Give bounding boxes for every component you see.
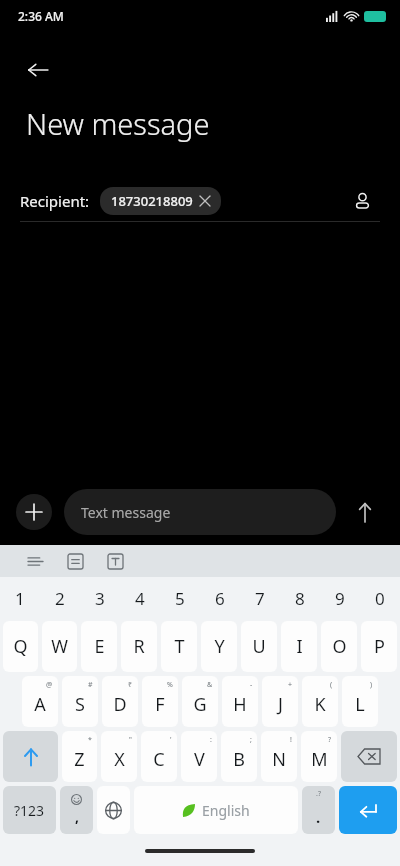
staticText: W bbox=[51, 634, 68, 659]
button[interactable]: 1 bbox=[0, 577, 40, 619]
button[interactable]: Text message bbox=[64, 489, 336, 535]
staticText: * bbox=[88, 735, 92, 745]
button[interactable]: ' bbox=[141, 731, 177, 782]
button[interactable]: ; bbox=[221, 731, 257, 782]
staticText: 2 bbox=[55, 587, 65, 610]
staticText: F bbox=[155, 692, 165, 717]
button[interactable]: ₹ bbox=[102, 676, 138, 727]
button[interactable]: : bbox=[181, 731, 217, 782]
button[interactable]: Choose contact bbox=[344, 183, 380, 219]
button[interactable]: Add attachment bbox=[16, 494, 52, 530]
staticText: New message bbox=[26, 104, 210, 143]
button[interactable]: + bbox=[262, 676, 298, 727]
staticText: 18730218809 bbox=[111, 192, 193, 210]
staticText: # bbox=[88, 680, 93, 690]
button[interactable]: ? bbox=[301, 731, 337, 782]
staticText: ? bbox=[328, 735, 332, 745]
staticText: Z bbox=[74, 747, 85, 772]
staticText: Text message bbox=[81, 503, 171, 522]
staticText: : bbox=[210, 735, 212, 745]
button[interactable]: T bbox=[161, 621, 197, 672]
button[interactable]: Emoji and comma bbox=[60, 786, 93, 834]
staticText: R bbox=[133, 634, 145, 659]
button[interactable]: 0 bbox=[360, 577, 400, 619]
button[interactable]: E bbox=[81, 621, 117, 672]
staticText: 7 bbox=[255, 587, 265, 610]
staticText: , bbox=[75, 807, 79, 826]
staticText: S bbox=[75, 692, 85, 717]
button[interactable]: P bbox=[361, 621, 397, 672]
button[interactable]: Y bbox=[201, 621, 237, 672]
staticText: ?123 bbox=[14, 801, 45, 820]
button[interactable]: * bbox=[62, 731, 97, 782]
button[interactable]: % bbox=[142, 676, 178, 727]
staticText: O bbox=[332, 634, 347, 659]
button[interactable]: Menu bbox=[22, 548, 48, 574]
staticText: P bbox=[374, 634, 385, 659]
staticText: ₹ bbox=[128, 680, 133, 690]
staticText: ; bbox=[250, 735, 252, 745]
button[interactable]: Backspace bbox=[341, 731, 397, 782]
staticText: @ bbox=[46, 680, 53, 690]
button[interactable]: O bbox=[321, 621, 357, 672]
button[interactable]: Text editing bbox=[102, 548, 128, 574]
staticText: Y bbox=[214, 634, 225, 659]
button[interactable]: 18730218809 bbox=[100, 187, 221, 215]
button[interactable]: 9 bbox=[320, 577, 360, 619]
staticText: E bbox=[94, 634, 105, 659]
staticText: I bbox=[296, 634, 303, 659]
button[interactable]: Q bbox=[3, 621, 38, 672]
staticText: L bbox=[355, 692, 365, 717]
button[interactable]: 6 bbox=[200, 577, 240, 619]
staticText: G bbox=[193, 692, 207, 717]
button[interactable]: @ bbox=[22, 676, 58, 727]
staticText: . bbox=[316, 807, 321, 827]
staticText: M bbox=[311, 747, 328, 772]
button[interactable]: ) bbox=[342, 676, 378, 727]
staticText: 3 bbox=[95, 587, 105, 610]
button[interactable]: 8 bbox=[280, 577, 320, 619]
button[interactable]: 3 bbox=[80, 577, 120, 619]
staticText: % bbox=[167, 680, 173, 690]
staticText: J bbox=[278, 692, 283, 717]
button[interactable]: ?123 bbox=[3, 786, 56, 834]
staticText: X bbox=[114, 747, 125, 772]
button[interactable]: 7 bbox=[240, 577, 280, 619]
staticText: ) bbox=[370, 680, 373, 690]
button[interactable]: U bbox=[241, 621, 277, 672]
staticText: N bbox=[272, 747, 286, 772]
staticText: & bbox=[207, 680, 213, 690]
button[interactable]: Send bbox=[346, 493, 384, 531]
staticText: + bbox=[288, 680, 293, 690]
staticText: English bbox=[202, 801, 250, 820]
staticText: K bbox=[314, 692, 326, 717]
button[interactable]: Enter bbox=[339, 786, 397, 834]
button[interactable]: & bbox=[182, 676, 218, 727]
button[interactable]: 5 bbox=[160, 577, 200, 619]
button[interactable]: Change language bbox=[97, 786, 130, 834]
button[interactable]: I bbox=[281, 621, 317, 672]
button[interactable]: R bbox=[121, 621, 157, 672]
staticText: 4 bbox=[135, 587, 145, 610]
button[interactable]: ! bbox=[261, 731, 297, 782]
staticText: U bbox=[252, 634, 266, 659]
button[interactable]: Back bbox=[18, 50, 58, 90]
staticText: H bbox=[233, 692, 247, 717]
button[interactable]: Period bbox=[302, 786, 335, 834]
button[interactable]: - bbox=[222, 676, 258, 727]
button[interactable]: Shift bbox=[3, 731, 58, 782]
staticText: Q bbox=[13, 634, 28, 659]
button[interactable]: ( bbox=[302, 676, 338, 727]
button[interactable]: 2 bbox=[40, 577, 80, 619]
staticText: 6 bbox=[215, 587, 225, 610]
button[interactable]: English bbox=[134, 786, 298, 834]
staticText: 5 bbox=[175, 587, 185, 610]
button[interactable]: # bbox=[62, 676, 98, 727]
button[interactable]: Clipboard bbox=[62, 548, 88, 574]
staticText: D bbox=[113, 692, 127, 717]
button[interactable]: " bbox=[101, 731, 137, 782]
button[interactable]: W bbox=[42, 621, 77, 672]
staticText: 1 bbox=[15, 587, 25, 610]
staticText: - bbox=[250, 680, 253, 690]
button[interactable]: 4 bbox=[120, 577, 160, 619]
